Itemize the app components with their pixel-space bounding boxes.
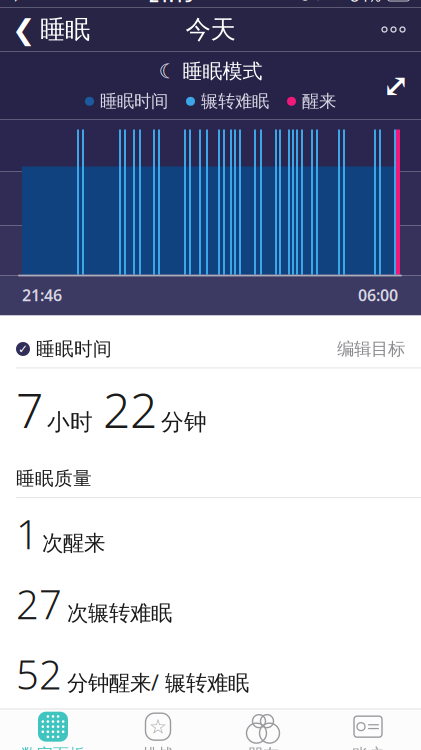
- button[interactable]: ☆: [105, 709, 210, 750]
- staticText: ✓: [18, 342, 28, 356]
- staticText: 52: [16, 647, 62, 700]
- staticText: 21:46: [22, 284, 62, 306]
- button[interactable]: 数字面板: [0, 709, 105, 750]
- staticText: 84%: [350, 0, 381, 6]
- staticText: 次醒来: [42, 530, 105, 556]
- staticText: ✈: [10, 0, 25, 5]
- staticText: ☾: [158, 60, 176, 83]
- staticText: ⤢: [382, 67, 409, 104]
- staticText: 睡眠质量: [16, 467, 92, 490]
- staticText: 06:00: [358, 284, 398, 306]
- staticText: 挑战: [142, 745, 174, 750]
- button[interactable]: ❮: [0, 7, 102, 51]
- staticText: 1: [16, 507, 39, 560]
- staticText: 编辑目标: [337, 338, 405, 360]
- button[interactable]: 朋友: [210, 709, 315, 750]
- staticText: 小时: [47, 408, 93, 436]
- staticText: 次辗转难眠: [67, 600, 172, 626]
- staticText: ❮: [12, 14, 35, 45]
- staticText: 今天: [185, 14, 235, 45]
- button[interactable]: 编辑目标: [337, 338, 405, 360]
- staticText: 27: [16, 577, 62, 630]
- button[interactable]: 账户: [315, 709, 420, 750]
- staticText: 21:19: [149, 0, 194, 7]
- button[interactable]: 全屏: [379, 68, 421, 102]
- staticText: 分钟醒来/ 辗转难眠: [67, 668, 249, 696]
- staticText: 睡眠时间: [36, 337, 112, 360]
- button[interactable]: 更多: [366, 7, 421, 51]
- staticText: 数字面板: [21, 745, 85, 750]
- staticText: ⊕: [299, 0, 311, 4]
- staticText: 睡眠: [40, 14, 90, 45]
- staticText: ➤: [316, 0, 328, 4]
- staticText: 醒来: [302, 91, 336, 112]
- staticText: 7: [16, 377, 43, 441]
- staticText: 22: [103, 377, 157, 441]
- staticText: 睡眠模式: [182, 59, 262, 84]
- staticText: 辗转难眠: [201, 91, 269, 112]
- staticText: ☆: [149, 715, 167, 738]
- staticText: 睡眠时间: [100, 91, 168, 112]
- staticText: 朋友: [247, 745, 279, 750]
- staticText: 分钟: [161, 408, 207, 436]
- staticText: 账户: [352, 745, 384, 750]
